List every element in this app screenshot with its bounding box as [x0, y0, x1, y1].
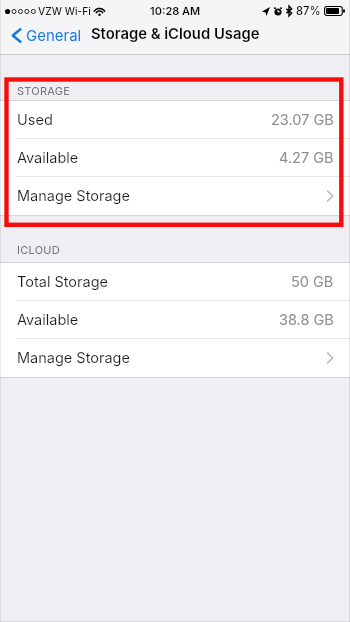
staticText: 87% — [296, 4, 321, 18]
staticText: Storage & iCloud Usage — [91, 25, 260, 43]
button[interactable]: Manage Storage — [0, 177, 350, 215]
staticText: Manage Storage — [17, 187, 130, 205]
button[interactable]: Manage Storage — [0, 339, 350, 377]
staticText: 4.27 GB — [279, 149, 334, 167]
other: Manage Storage — [327, 353, 333, 363]
button[interactable]: Used — [0, 101, 350, 139]
staticText: 50 GB — [291, 273, 334, 291]
staticText: ICLOUD — [17, 243, 60, 256]
staticText: Manage Storage — [17, 349, 130, 367]
staticText: STORAGE — [17, 84, 71, 97]
staticText: VZW Wi-Fi — [38, 5, 91, 17]
button[interactable]: Available — [0, 139, 350, 177]
staticText: General — [26, 26, 82, 44]
staticText: Available — [17, 311, 79, 329]
button[interactable]: Available — [0, 301, 350, 339]
staticText: Used — [17, 111, 53, 129]
button[interactable]: General — [0, 21, 88, 49]
staticText: Total Storage — [17, 273, 109, 291]
button[interactable]: Total Storage — [0, 263, 350, 301]
staticText: 38.8 GB — [279, 311, 334, 329]
other: Manage Storage — [327, 191, 333, 201]
staticText: Available — [17, 149, 79, 167]
staticText: 23.07 GB — [271, 111, 334, 129]
staticText: 10:28 AM — [150, 4, 201, 17]
